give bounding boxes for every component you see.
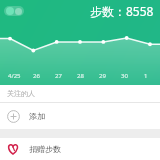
- staticText: 添加: [29, 111, 45, 121]
- staticText: 捐赠步数: [29, 144, 61, 154]
- staticText: 30: [121, 72, 128, 80]
- staticText: 步数：8558: [90, 3, 154, 19]
- staticText: 关注的人: [7, 89, 35, 98]
- staticText: 28: [77, 72, 84, 80]
- staticText: 1: [144, 72, 148, 80]
- staticText: 29: [99, 72, 106, 80]
- button[interactable]: 捐赠步数: [0, 138, 160, 160]
- staticText: 27: [55, 72, 62, 80]
- staticText: 4/25: [8, 72, 21, 80]
- button[interactable]: Profile: [4, 6, 24, 16]
- staticText: 26: [33, 72, 40, 80]
- button[interactable]: 添加: [0, 103, 160, 129]
